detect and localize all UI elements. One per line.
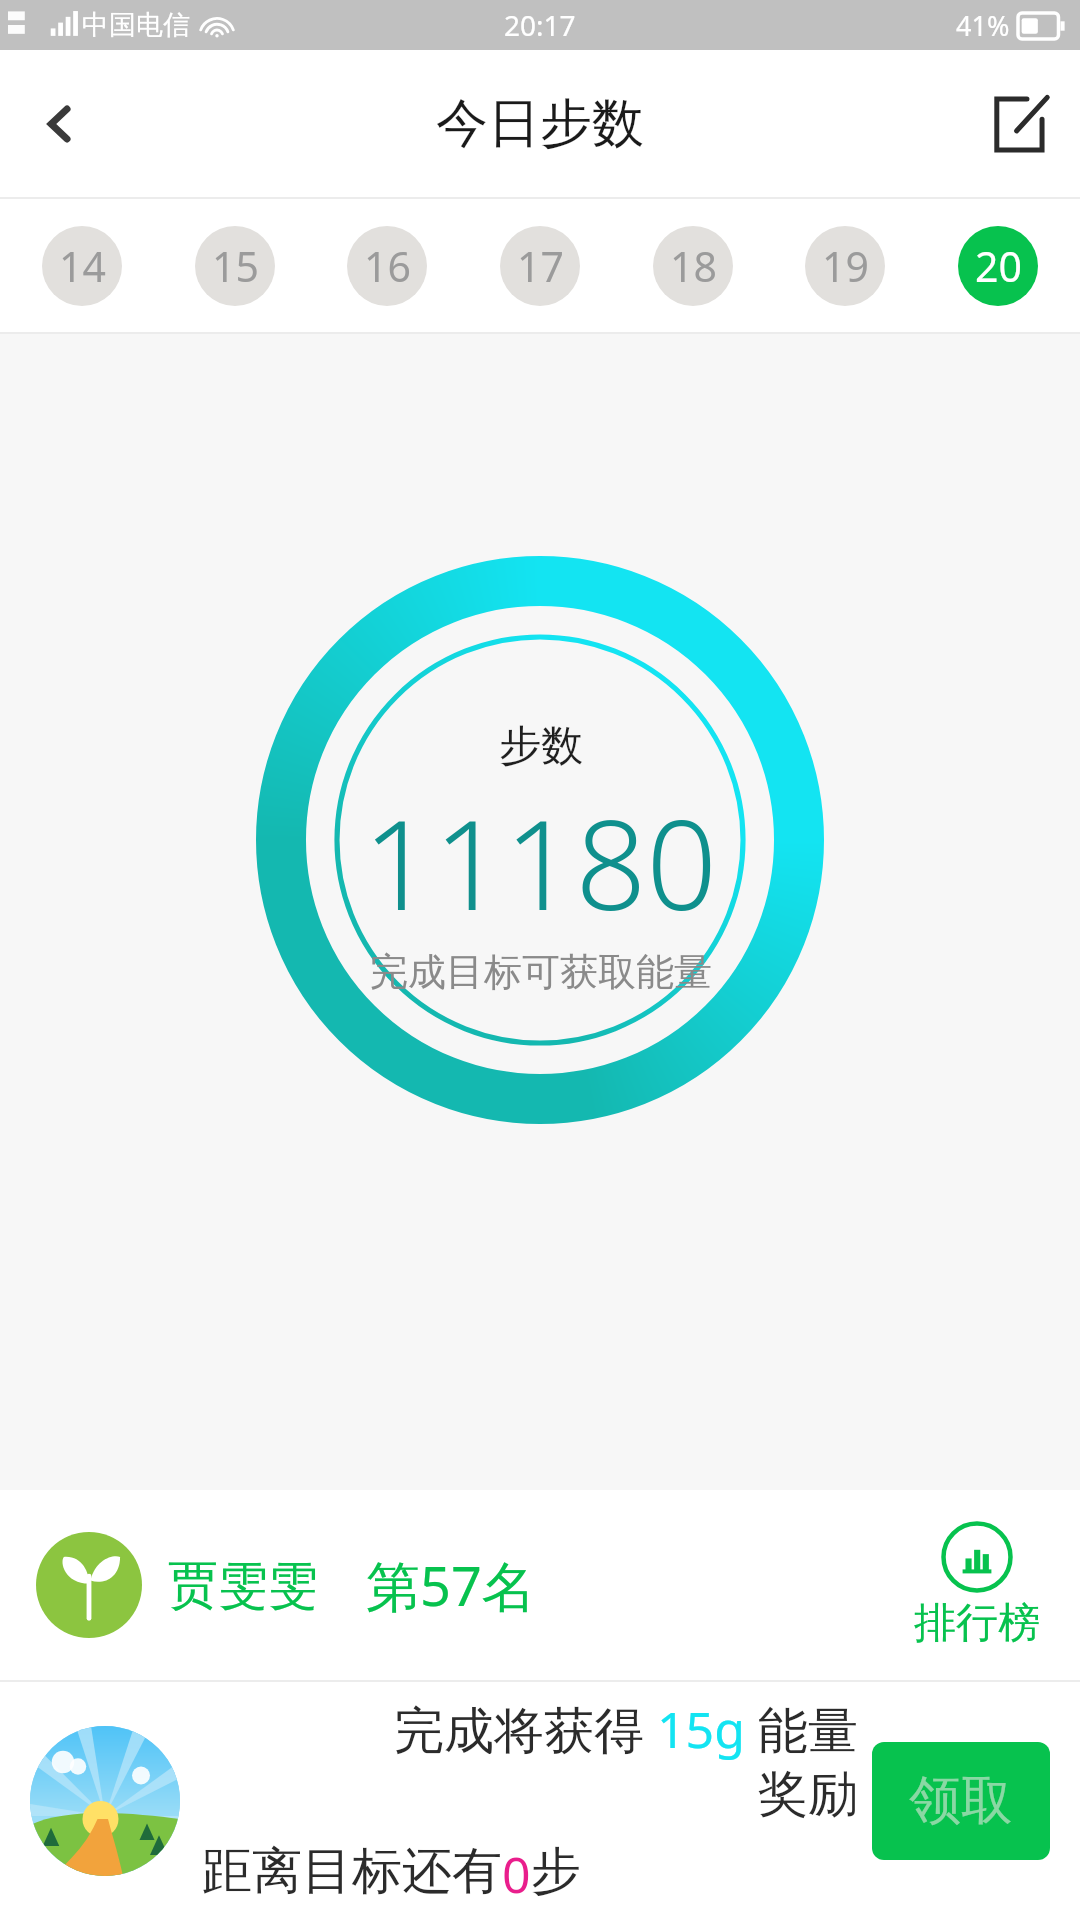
staticText: 今日步数 <box>436 91 644 157</box>
staticText: 16 <box>364 238 411 294</box>
staticText: 0 <box>502 1840 531 1908</box>
staticText: 能量 <box>745 1695 858 1763</box>
staticText: 步数 <box>499 720 583 773</box>
staticText: 领取 <box>909 1768 1013 1834</box>
button[interactable]: 15 <box>195 226 275 306</box>
staticText: 完成将获得 <box>394 1695 657 1763</box>
button[interactable]: 16 <box>347 226 427 306</box>
staticText: 排行榜 <box>914 1597 1040 1650</box>
button[interactable]: 排行榜 <box>910 1517 1044 1654</box>
button[interactable]: 贾雯雯 <box>0 1490 1080 1680</box>
staticText: 14 <box>59 238 106 294</box>
staticText: 完成目标可获取能量 <box>370 948 712 996</box>
button[interactable]: 18 <box>653 226 733 306</box>
staticText: 第57名 <box>366 1548 536 1622</box>
button[interactable]: 领取 <box>872 1742 1050 1860</box>
button[interactable]: Share <box>960 64 1080 184</box>
staticText: 20 <box>975 238 1022 294</box>
staticText: 奖励 <box>758 1763 858 1826</box>
button[interactable]: 19 <box>805 226 885 306</box>
staticText: 中国电信 <box>82 8 190 42</box>
staticText: 41% <box>956 7 1010 44</box>
button[interactable]: 20 <box>958 226 1038 306</box>
staticText: 步 <box>531 1840 581 1903</box>
staticText: 19 <box>822 238 869 294</box>
staticText: 距离目标还有 <box>202 1840 502 1903</box>
staticText: 11180 <box>363 777 718 946</box>
button[interactable]: Back <box>0 64 120 184</box>
button[interactable]: 17 <box>500 226 580 306</box>
staticText: 贾雯雯 <box>168 1554 318 1617</box>
staticText: 18 <box>670 238 717 294</box>
staticText: 20:17 <box>504 6 576 44</box>
button[interactable]: 14 <box>42 226 122 306</box>
staticText: 15 <box>212 238 259 294</box>
staticText: 15g <box>657 1695 745 1763</box>
staticText: 17 <box>517 238 564 294</box>
